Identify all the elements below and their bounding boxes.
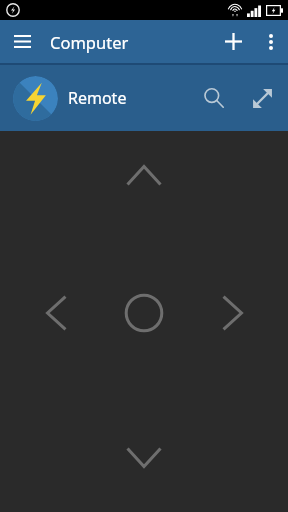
button[interactable]: Add [212, 20, 254, 63]
button[interactable]: Fullscreen [238, 74, 286, 122]
button[interactable]: Search [190, 74, 238, 122]
button[interactable]: Select [106, 275, 182, 351]
button[interactable]: Open navigation drawer [0, 20, 44, 63]
button[interactable]: More options [254, 20, 288, 63]
button[interactable]: Up [106, 145, 182, 205]
staticText: Remote [68, 87, 127, 109]
button[interactable]: Right [202, 275, 262, 351]
button[interactable]: Down [106, 427, 182, 487]
button[interactable]: Left [26, 275, 86, 351]
staticText: Computer [50, 31, 129, 53]
button[interactable]: Remote app icon [13, 76, 58, 121]
